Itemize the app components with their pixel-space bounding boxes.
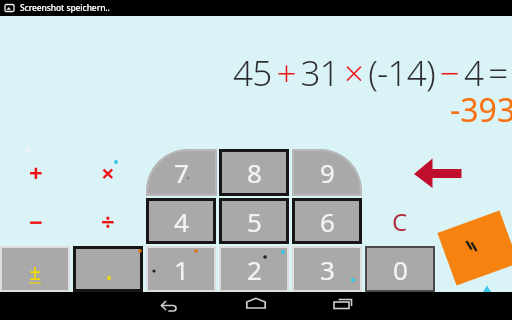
staticText: 5: [247, 204, 262, 239]
staticText: 45 + 31 × (-14) − 4 =: [233, 49, 508, 97]
button[interactable]: C: [365, 198, 435, 244]
button[interactable]: ÷: [73, 198, 143, 244]
button[interactable]: [410, 155, 464, 191]
staticText: ÷: [101, 205, 115, 238]
button[interactable]: 4: [146, 198, 216, 244]
staticText: +: [29, 156, 43, 189]
staticText: 4: [174, 204, 189, 239]
staticText: C: [392, 205, 408, 238]
staticText: ±: [29, 258, 42, 287]
button[interactable]: 8: [219, 149, 289, 196]
staticText: 7: [174, 155, 189, 190]
button[interactable]: [323, 292, 363, 320]
button[interactable]: 6: [292, 198, 362, 244]
staticText: Screenshot speichern..: [20, 2, 110, 14]
button[interactable]: 9: [292, 149, 362, 196]
button[interactable]: −: [0, 198, 71, 244]
staticText: 1: [174, 252, 189, 287]
staticText: 9: [320, 155, 335, 190]
button[interactable]: [437, 210, 512, 286]
button[interactable]: ×: [73, 149, 143, 196]
button[interactable]: ±: [0, 246, 70, 292]
staticText: −: [29, 205, 43, 238]
button[interactable]: 3: [292, 246, 362, 292]
staticText: 2: [247, 252, 262, 287]
button[interactable]: [73, 246, 143, 292]
button[interactable]: 7: [146, 149, 217, 196]
button[interactable]: +: [0, 149, 71, 196]
staticText: 8: [247, 155, 262, 190]
staticText: 6: [320, 204, 335, 239]
staticText: 3: [320, 252, 335, 287]
button[interactable]: [236, 292, 276, 320]
staticText: ×: [101, 156, 115, 189]
button[interactable]: 0: [365, 246, 435, 292]
button[interactable]: 1: [146, 246, 216, 292]
button[interactable]: [150, 292, 190, 320]
staticText: -393: [450, 88, 512, 132]
button[interactable]: 2: [219, 246, 289, 292]
staticText: 0: [393, 252, 408, 287]
button[interactable]: 5: [219, 198, 289, 244]
